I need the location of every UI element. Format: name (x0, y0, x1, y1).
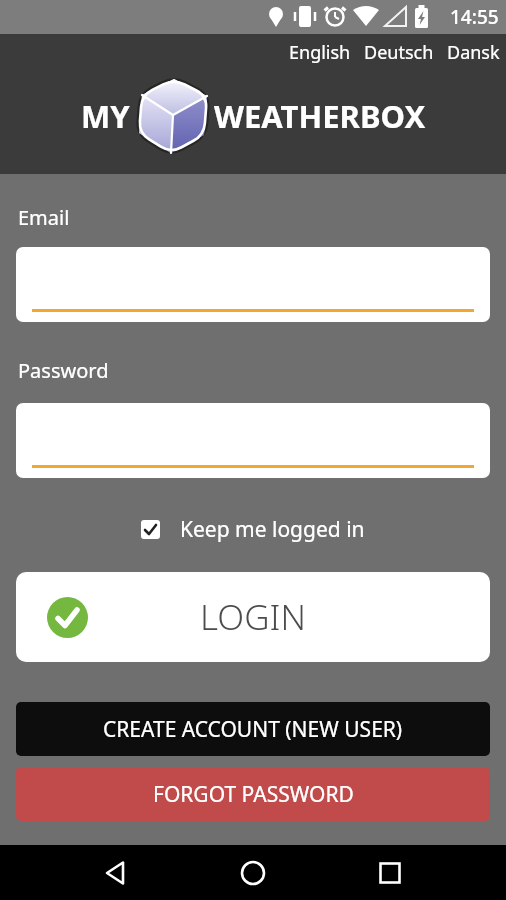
staticText: Keep me logged in (180, 515, 365, 544)
staticText: CREATE ACCOUNT (NEW USER) (103, 715, 403, 744)
button[interactable] (48, 845, 184, 900)
button[interactable]: Dansk (443, 40, 504, 65)
staticText: Email (18, 204, 70, 231)
staticText: WEATHERBOX (214, 95, 426, 137)
button[interactable] (321, 845, 458, 900)
button[interactable]: CREATE ACCOUNT (NEW USER) (16, 702, 490, 756)
staticText: FORGOT PASSWORD (153, 780, 354, 809)
button[interactable]: LOGIN (16, 572, 490, 662)
staticText: MY (81, 95, 130, 137)
staticText: LOGIN (200, 593, 306, 641)
button[interactable] (16, 403, 490, 478)
button[interactable] (184, 845, 321, 900)
staticText: Password (18, 357, 109, 384)
button[interactable]: Keep me logged in (16, 515, 490, 544)
staticText: 14:55 (450, 4, 499, 30)
button[interactable] (16, 247, 490, 322)
button[interactable]: English (285, 40, 355, 65)
button[interactable]: FORGOT PASSWORD (16, 767, 490, 821)
button[interactable]: Deutsch (360, 40, 438, 65)
